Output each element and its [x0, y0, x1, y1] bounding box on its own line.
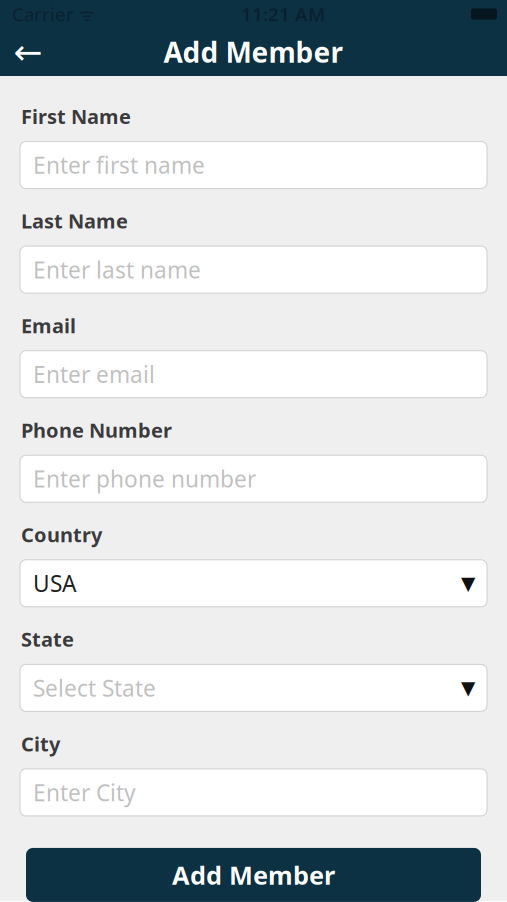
button[interactable]: USA [0, 560, 507, 607]
button[interactable]: Add Member [0, 848, 507, 902]
staticText: Email [21, 312, 76, 339]
staticText: Add Member [163, 33, 343, 71]
staticText: USA [33, 568, 76, 598]
staticText: Select State [33, 673, 156, 703]
button[interactable]: Enter City [0, 769, 507, 816]
staticText: ▼ [461, 677, 475, 698]
button[interactable]: Enter phone number [0, 455, 507, 502]
staticText: 11:21 AM [241, 2, 325, 26]
staticText: City [21, 730, 60, 757]
staticText: Enter last name [33, 255, 201, 285]
staticText: State [21, 626, 74, 652]
button[interactable]: Enter email [0, 351, 507, 398]
staticText: Phone Number [21, 417, 172, 443]
staticText: ᯤ [74, 2, 95, 25]
staticText: ← [13, 32, 42, 72]
staticText: Country [21, 521, 102, 548]
button[interactable]: Select State [0, 664, 507, 711]
staticText: Enter City [33, 777, 136, 807]
button[interactable]: Enter first name [0, 142, 507, 189]
staticText: Last Name [21, 208, 128, 234]
staticText: Enter first name [33, 150, 205, 180]
staticText: Add Member [172, 858, 335, 892]
staticText: Carrier [12, 2, 74, 26]
button[interactable]: Back [4, 28, 52, 76]
staticText: Enter phone number [33, 464, 256, 494]
staticText: First Name [21, 103, 131, 130]
button[interactable]: Enter last name [0, 246, 507, 293]
staticText: ▼ [461, 573, 475, 594]
staticText: Enter email [33, 359, 155, 389]
